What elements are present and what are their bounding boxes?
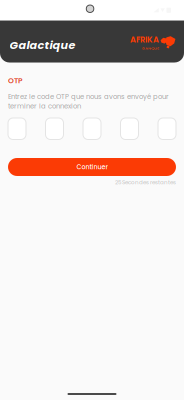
button[interactable]: Continuer bbox=[8, 158, 176, 176]
staticText: AFRIKA bbox=[130, 34, 159, 45]
staticText: Galactique bbox=[9, 37, 75, 53]
button[interactable]: OTP digit bbox=[45, 118, 63, 139]
staticText: BANQUE bbox=[142, 45, 159, 51]
staticText: Entrez le code OTP que nous avons envoyé… bbox=[8, 92, 169, 111]
button[interactable]: OTP digit bbox=[158, 118, 176, 139]
staticText: 25 Secondes restantes bbox=[115, 178, 176, 186]
staticText: Continuer bbox=[76, 162, 107, 171]
button[interactable]: OTP digit bbox=[8, 118, 26, 139]
staticText: OTP bbox=[8, 75, 23, 86]
button[interactable]: OTP digit bbox=[83, 118, 101, 139]
button[interactable]: OTP digit bbox=[120, 118, 138, 139]
